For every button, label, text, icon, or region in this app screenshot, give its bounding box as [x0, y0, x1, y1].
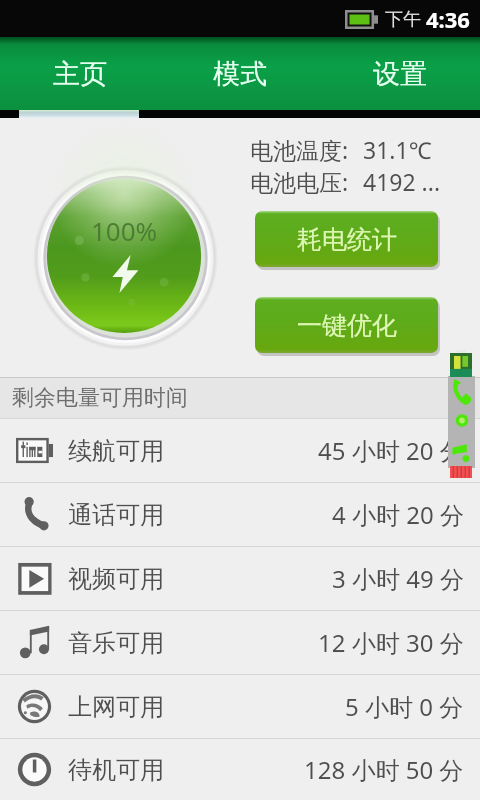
staticText: 4 小时 20 分: [332, 498, 464, 531]
staticText: 100%: [91, 213, 158, 248]
button[interactable]: 通话可用: [0, 483, 480, 546]
staticText: 31.1℃: [363, 134, 432, 165]
button[interactable]: 主页: [0, 37, 160, 110]
staticText: 电池电压:: [250, 166, 349, 197]
button[interactable]: 模式: [160, 37, 320, 110]
staticText: 耗电统计: [297, 224, 397, 255]
button[interactable]: 音乐可用: [0, 611, 480, 674]
staticText: 续航可用: [68, 436, 164, 466]
staticText: 通话可用: [68, 500, 164, 530]
staticText: 5 小时 0 分: [345, 690, 464, 723]
button[interactable]: 设置: [320, 37, 480, 110]
staticText: 一键优化: [297, 310, 397, 341]
button[interactable]: 耗电统计: [255, 211, 438, 267]
button[interactable]: Battery floating shortcut: [448, 376, 475, 468]
staticText: 剩余电量可用时间: [12, 384, 188, 412]
staticText: 上网可用: [68, 692, 164, 722]
staticText: 3 小时 49 分: [332, 562, 464, 595]
button[interactable]: 待机可用: [0, 739, 480, 800]
staticText: 设置: [373, 57, 427, 91]
staticText: 音乐可用: [68, 628, 164, 658]
staticText: 视频可用: [68, 564, 164, 594]
staticText: 待机可用: [68, 755, 164, 785]
staticText: 下午: [385, 8, 421, 31]
button[interactable]: 上网可用: [0, 675, 480, 738]
button[interactable]: 视频可用: [0, 547, 480, 610]
staticText: 4192 ...: [363, 166, 441, 197]
staticText: 128 小时 50 分: [304, 753, 464, 786]
button[interactable]: 一键优化: [255, 297, 438, 353]
staticText: 45 小时 20 分: [318, 434, 464, 467]
staticText: 主页: [53, 57, 107, 91]
staticText: 电池温度:: [250, 134, 349, 165]
staticText: 12 小时 30 分: [318, 626, 464, 659]
staticText: 模式: [213, 57, 267, 91]
staticText: 4:36: [426, 4, 470, 34]
button[interactable]: 续航可用: [0, 419, 480, 482]
